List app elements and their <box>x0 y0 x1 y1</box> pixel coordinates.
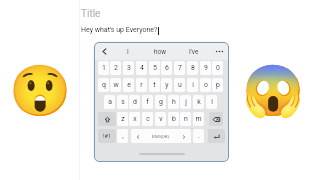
button[interactable]: 6 <box>161 61 172 75</box>
staticText: z <box>121 115 125 123</box>
button[interactable]: how <box>142 43 178 60</box>
staticText: f <box>146 98 149 106</box>
button[interactable]: p <box>212 78 223 92</box>
button[interactable]: , <box>117 129 128 143</box>
staticText: 0 <box>216 64 220 72</box>
button[interactable]: 4 <box>136 61 147 75</box>
staticText: y <box>165 81 169 89</box>
staticText: 9 <box>204 64 208 72</box>
button[interactable]: Backspace <box>209 112 223 126</box>
button[interactable]: 3 <box>123 61 134 75</box>
button[interactable]: g <box>155 95 166 109</box>
button[interactable]: 9 <box>200 61 211 75</box>
staticText: . <box>198 132 200 140</box>
button[interactable]: d <box>129 95 140 109</box>
button[interactable]: 0 <box>212 61 223 75</box>
button[interactable]: y <box>161 78 172 92</box>
button[interactable]: k <box>193 95 204 109</box>
button[interactable]: More options <box>210 43 228 60</box>
staticText: m <box>195 115 202 123</box>
button[interactable]: a <box>104 95 115 109</box>
staticText: c <box>146 115 150 123</box>
button[interactable]: c <box>142 112 153 126</box>
staticText: Hey what's up Everyone? <box>81 26 158 34</box>
button[interactable]: !#1 <box>98 129 116 143</box>
button[interactable]: w <box>110 78 121 92</box>
staticText: 2 <box>114 64 118 72</box>
staticText: ENG(UK) <box>152 134 170 139</box>
button[interactable]: Enter <box>208 129 225 143</box>
other: Enter <box>213 133 220 140</box>
staticText: 7 <box>178 64 182 72</box>
staticText: 3 <box>127 64 131 72</box>
other: Backspace <box>213 116 220 123</box>
button[interactable]: i <box>187 78 198 92</box>
button[interactable]: o <box>200 78 211 92</box>
staticText: 4 <box>140 64 144 72</box>
staticText: I've <box>189 48 199 56</box>
button[interactable]: j <box>180 95 191 109</box>
button[interactable]: 1 <box>98 61 109 75</box>
button[interactable]: e <box>123 78 134 92</box>
button[interactable]: v <box>155 112 166 126</box>
staticText: x <box>133 115 137 123</box>
button[interactable]: z <box>117 112 128 126</box>
staticText: b <box>172 115 176 123</box>
staticText: I <box>127 48 129 56</box>
button[interactable]: Previous suggestions <box>95 43 113 60</box>
button[interactable]: Space <box>131 129 191 143</box>
staticText: w <box>113 81 119 89</box>
button[interactable]: q <box>98 78 109 92</box>
button[interactable]: x <box>129 112 140 126</box>
button[interactable]: f <box>142 95 153 109</box>
button[interactable]: m <box>193 112 204 126</box>
staticText: o <box>204 81 208 89</box>
button[interactable]: l <box>206 95 217 109</box>
button[interactable]: Shift <box>98 112 116 126</box>
staticText: 8 <box>191 64 195 72</box>
staticText: q <box>102 81 106 89</box>
button[interactable]: u <box>174 78 185 92</box>
button[interactable]: . <box>193 129 204 143</box>
staticText: s <box>121 98 125 106</box>
staticText: 1 <box>102 64 106 72</box>
staticText: 6 <box>165 64 169 72</box>
staticText: , <box>122 132 124 140</box>
staticText: u <box>178 81 182 89</box>
button[interactable]: n <box>180 112 191 126</box>
staticText: i <box>192 81 194 89</box>
staticText: how <box>154 48 166 56</box>
staticText: Title <box>81 8 101 20</box>
button[interactable]: b <box>168 112 179 126</box>
button[interactable]: t <box>149 78 160 92</box>
other: Shift <box>105 117 110 122</box>
button[interactable]: s <box>117 95 128 109</box>
staticText: n <box>184 115 188 123</box>
button[interactable]: 2 <box>110 61 121 75</box>
button[interactable]: I <box>113 43 142 60</box>
staticText: a <box>108 98 112 106</box>
staticText: k <box>197 98 201 106</box>
staticText: p <box>216 81 220 89</box>
staticText: d <box>133 98 137 106</box>
staticText: 5 <box>153 64 157 72</box>
button[interactable]: 8 <box>187 61 198 75</box>
staticText: e <box>127 81 131 89</box>
staticText: t <box>153 81 156 89</box>
button[interactable]: r <box>136 78 147 92</box>
staticText: g <box>159 98 163 106</box>
button[interactable]: h <box>168 95 179 109</box>
button[interactable]: 7 <box>174 61 185 75</box>
staticText: j <box>185 98 187 106</box>
staticText: 😲 <box>9 62 72 121</box>
staticText: h <box>172 98 176 106</box>
button[interactable]: I've <box>178 43 210 60</box>
staticText: v <box>159 115 163 123</box>
staticText: l <box>211 98 213 106</box>
staticText: !#1 <box>103 133 112 140</box>
staticText: r <box>140 81 143 89</box>
button[interactable]: 5 <box>149 61 160 75</box>
staticText: 😱 <box>242 62 305 121</box>
